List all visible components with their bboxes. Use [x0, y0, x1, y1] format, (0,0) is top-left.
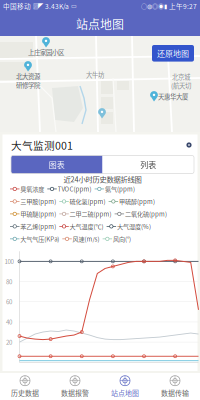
staticText: ▭ — [71, 2, 77, 9]
staticText: 大气气压(KPa) — [20, 234, 59, 243]
staticText: 北大资源 — [16, 71, 40, 81]
staticText: 上庄家园小区 — [28, 47, 64, 57]
staticText: 三甲胺(ppm) — [20, 197, 56, 206]
button[interactable]: 历史数据 — [0, 373, 50, 400]
staticText: ▨◤ — [33, 2, 43, 10]
button[interactable]: 数据传输 — [150, 373, 200, 400]
staticText: 硫化氢(ppm) — [70, 197, 106, 206]
staticText: 二甲二硫(ppm) — [70, 209, 112, 218]
staticText: 二氧化硫(ppm) — [125, 209, 167, 218]
staticText: 列表 — [140, 159, 156, 170]
staticText: (航天切 — [171, 81, 191, 90]
staticText: 20 — [6, 338, 12, 346]
staticText: 研修学院 — [16, 80, 40, 90]
staticText: 大气湿度(%) — [117, 222, 151, 231]
staticText: 站点地图 — [76, 15, 124, 33]
staticText: 大气温度(℃) — [70, 222, 104, 231]
staticText: 大牛坊 — [86, 70, 104, 79]
staticText: 近24小时历史数据折线图 — [63, 174, 141, 184]
button[interactable]: 图表 — [11, 155, 102, 173]
staticText: 北京城 — [172, 72, 190, 81]
staticText: TVOC(ppm) — [58, 184, 92, 193]
button[interactable]: 列表 — [102, 155, 194, 173]
staticText: 氨气(ppm) — [105, 184, 135, 193]
staticText: 天惠华大厦 — [158, 92, 188, 101]
button[interactable]: Close — [184, 140, 194, 150]
staticText: 60 — [6, 297, 12, 306]
staticText: 40 — [6, 317, 12, 326]
staticText: 3.43K/a — [45, 1, 69, 11]
staticText: 中国移动 — [3, 1, 31, 11]
staticText: 数据报警 — [61, 388, 89, 398]
staticText: 站点地图 — [111, 388, 139, 398]
button[interactable]: 还原地图 — [152, 45, 194, 62]
staticText: ◌◍◎◉▮ — [141, 2, 167, 10]
button[interactable]: 数据报警 — [50, 373, 100, 400]
staticText: 历史数据 — [11, 388, 39, 398]
staticText: 上午9:27 — [169, 1, 197, 11]
staticText: 风向(°) — [113, 234, 131, 243]
staticText: 风速(m/s) — [73, 234, 100, 243]
staticText: 苯乙烯(ppm) — [20, 222, 56, 231]
staticText: 臭氧浓度 — [20, 184, 44, 193]
staticText: 甲硫醇(ppm) — [119, 197, 155, 206]
staticText: 数据传输 — [161, 388, 189, 398]
staticText: 100 — [4, 257, 13, 266]
staticText: 80 — [6, 277, 12, 286]
staticText: 还原地图 — [157, 47, 189, 59]
staticText: 图表 — [49, 159, 65, 170]
staticText: 甲硫醚(ppm) — [20, 209, 56, 218]
button[interactable]: 站点地图 — [100, 373, 150, 400]
staticText: 大气监测001 — [11, 137, 73, 153]
